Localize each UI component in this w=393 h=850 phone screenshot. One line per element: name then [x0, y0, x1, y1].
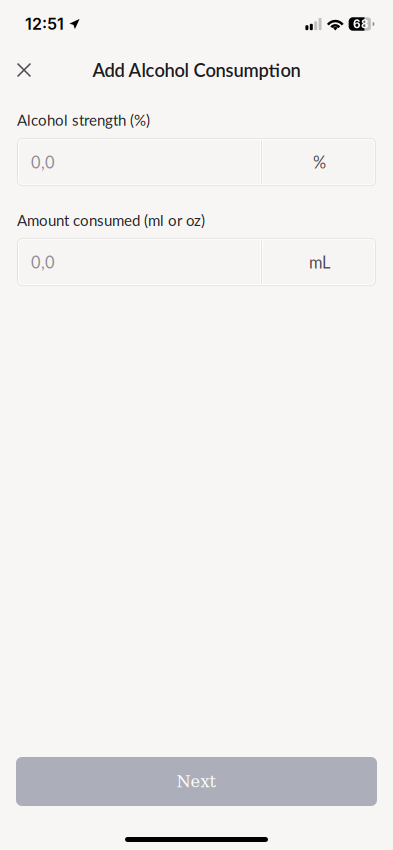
staticText: %: [313, 152, 326, 172]
button[interactable]: Close: [0, 48, 48, 92]
button[interactable]: Next: [16, 757, 377, 806]
staticText: Amount consumed (ml or oz): [17, 211, 205, 229]
staticText: 68: [353, 17, 369, 31]
staticText: Next: [176, 772, 216, 791]
staticText: mL: [309, 252, 330, 272]
staticText: 0,0: [31, 152, 55, 172]
staticText: 12:51: [25, 14, 64, 34]
staticText: 0,0: [31, 252, 55, 272]
staticText: Alcohol strength (%): [17, 111, 150, 129]
staticText: Add Alcohol Consumption: [92, 59, 300, 81]
